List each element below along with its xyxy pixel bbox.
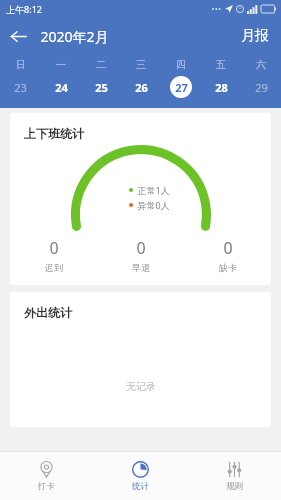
button[interactable]: 0 <box>10 237 97 273</box>
other: 统计 <box>132 461 149 478</box>
staticText: 四 <box>176 58 186 71</box>
staticText: 三 <box>136 58 146 71</box>
staticText: 规则 <box>226 481 243 492</box>
staticText: 2020年2月 <box>40 27 109 46</box>
staticText: 二 <box>96 58 106 71</box>
staticText: 27 <box>175 80 188 95</box>
other: 规则 <box>226 461 243 478</box>
staticText: 0 <box>223 237 233 259</box>
staticText: 无记录 <box>126 380 156 393</box>
staticText: 外出统计 <box>24 305 72 320</box>
staticText: 月报 <box>241 27 269 45</box>
button[interactable]: 28 <box>201 74 241 100</box>
staticText: 23 <box>14 80 27 95</box>
button[interactable]: 月报 <box>229 21 281 51</box>
button[interactable]: 26 <box>121 74 161 100</box>
staticText: 统计 <box>132 481 149 492</box>
staticText: 25 <box>95 80 108 95</box>
staticText: 六 <box>256 58 266 71</box>
button[interactable]: 打卡 <box>0 452 93 500</box>
staticText: 正常1人 <box>137 184 170 196</box>
staticText: 上午8:12 <box>6 3 42 15</box>
button[interactable]: 返回 <box>0 18 36 54</box>
button[interactable]: 外出统计 <box>10 292 271 427</box>
staticText: 打卡 <box>38 481 55 492</box>
staticText: 五 <box>216 58 226 71</box>
staticText: 迟到 <box>45 262 63 273</box>
button[interactable]: 上下班统计 <box>10 113 271 285</box>
button[interactable]: 24 <box>41 74 81 100</box>
staticText: 26 <box>135 80 148 95</box>
staticText: 缺卡 <box>219 262 237 273</box>
staticText: 早退 <box>132 262 150 273</box>
staticText: 29 <box>255 80 268 95</box>
staticText: 日 <box>16 58 26 71</box>
staticText: 0 <box>136 237 146 259</box>
button[interactable]: 29 <box>241 74 281 100</box>
button[interactable]: 25 <box>81 74 121 100</box>
staticText: 一 <box>56 58 66 71</box>
button[interactable]: 27 <box>161 74 201 100</box>
staticText: 上下班统计 <box>24 126 84 141</box>
staticText: 0 <box>49 237 59 259</box>
staticText: 28 <box>215 80 228 95</box>
staticText: 异常0人 <box>137 199 170 211</box>
other: 打卡 <box>38 461 55 478</box>
button[interactable]: 0 <box>97 237 184 273</box>
button[interactable]: 23 <box>0 74 41 100</box>
staticText: 24 <box>55 80 68 95</box>
button[interactable]: 统计 <box>93 452 187 500</box>
button[interactable]: 0 <box>184 237 271 273</box>
button[interactable]: 规则 <box>187 452 281 500</box>
